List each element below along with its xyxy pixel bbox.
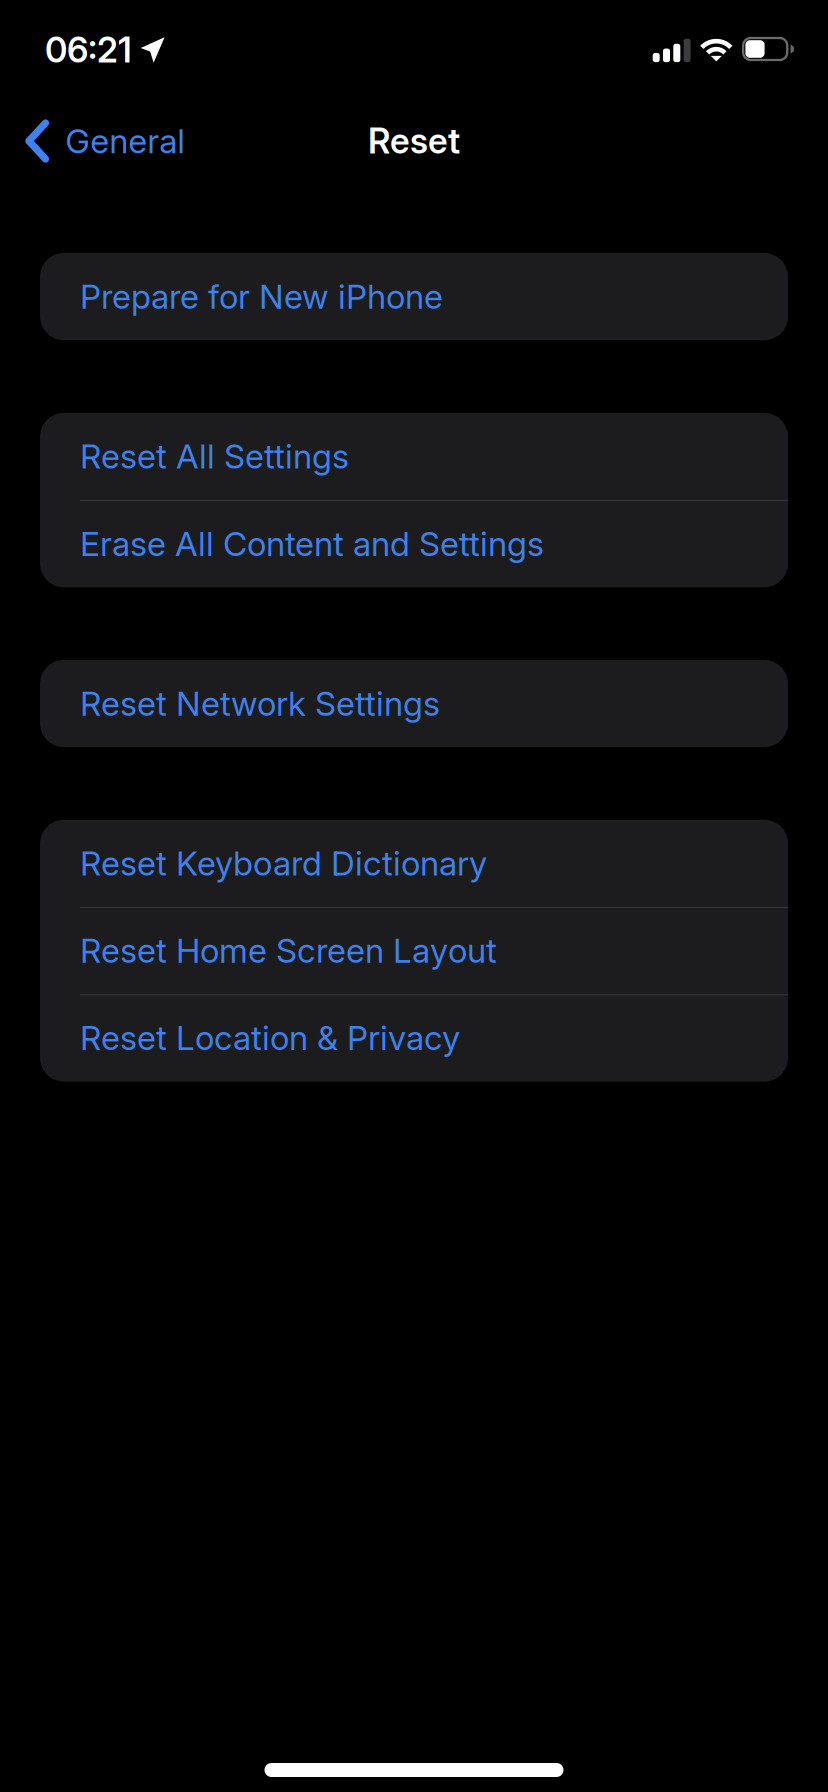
button[interactable]: General xyxy=(0,107,199,174)
button[interactable]: Reset Network Settings xyxy=(40,660,788,747)
button[interactable]: Reset Home Screen Layout xyxy=(40,907,788,994)
staticText: 06:21 xyxy=(45,29,132,71)
staticText: Reset Network Settings xyxy=(80,683,440,724)
button[interactable]: Prepare for New iPhone xyxy=(40,253,788,340)
staticText: Reset xyxy=(368,120,460,162)
staticText: Prepare for New iPhone xyxy=(80,276,443,317)
staticText: Reset Home Screen Layout xyxy=(80,930,497,971)
staticText: Reset All Settings xyxy=(80,436,349,477)
button[interactable]: Erase All Content and Settings xyxy=(40,500,788,587)
staticText: General xyxy=(65,121,185,161)
staticText: Erase All Content and Settings xyxy=(80,524,544,564)
staticText: Reset Location & Privacy xyxy=(80,1018,460,1058)
button[interactable]: Reset Keyboard Dictionary xyxy=(40,820,788,907)
button[interactable]: Reset All Settings xyxy=(40,413,788,500)
staticText: Reset Keyboard Dictionary xyxy=(80,843,487,883)
button[interactable]: Reset Location & Privacy xyxy=(40,994,788,1082)
